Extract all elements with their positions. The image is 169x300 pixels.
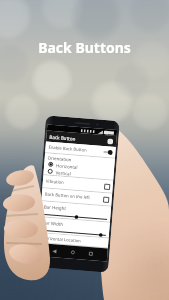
staticText: Horizontal [56, 162, 78, 170]
button[interactable]: Bar Width [39, 217, 110, 238]
button[interactable]: Horizontal [44, 160, 114, 173]
staticText: Vibration [46, 178, 64, 186]
button[interactable]: Horizontal Location [38, 233, 109, 248]
button[interactable]: Back [51, 248, 57, 254]
button[interactable]: Bar Height [40, 201, 111, 222]
staticText: Back Button [49, 134, 77, 142]
staticText: Enable Back Button [48, 145, 88, 154]
staticText: Horizontal Location [42, 235, 82, 244]
button[interactable]: Vertical [43, 167, 114, 180]
staticText: Orientation [47, 155, 72, 162]
button[interactable]: Recents [88, 251, 94, 256]
button[interactable]: Account [107, 138, 113, 145]
button[interactable]: Back Button on the left [41, 188, 112, 206]
button[interactable]: Vibration [42, 175, 113, 193]
staticText: Bar Height [44, 203, 67, 211]
staticText: Bar Width [42, 219, 64, 227]
staticText: Back Buttons [38, 38, 131, 57]
staticText: Back Button on the left [45, 191, 91, 201]
staticText: Vertical [55, 169, 72, 176]
button[interactable]: Home [70, 250, 76, 255]
button[interactable]: Enable Back Button [45, 141, 116, 158]
